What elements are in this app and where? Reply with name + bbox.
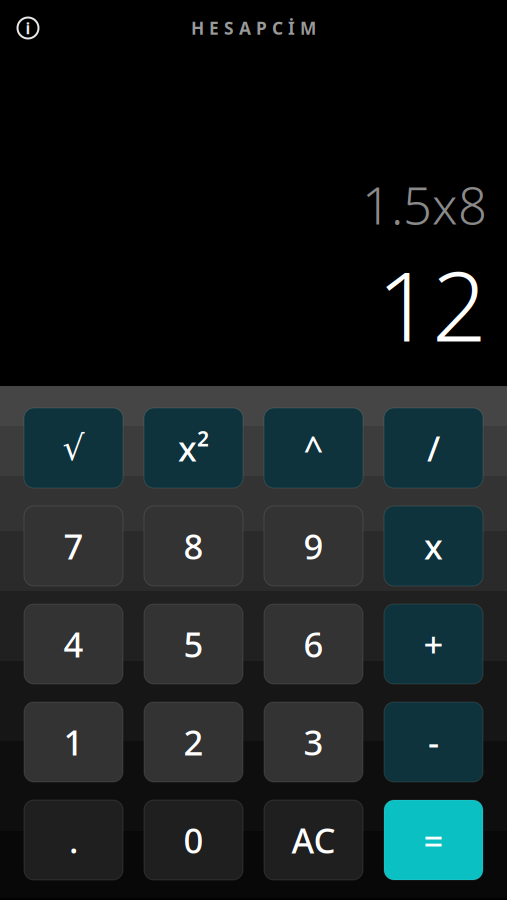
staticText: 1 xyxy=(63,719,83,765)
staticText: / xyxy=(427,425,440,471)
staticText: - xyxy=(428,719,439,765)
staticText: √ xyxy=(62,428,84,468)
staticText: . xyxy=(69,817,78,863)
button[interactable]: AC xyxy=(264,800,363,880)
staticText: 5 xyxy=(183,621,203,667)
staticText: H E S A P C İ M xyxy=(191,16,316,39)
button[interactable]: x² xyxy=(144,408,243,488)
staticText: 4 xyxy=(63,621,83,667)
staticText: x² xyxy=(178,425,209,471)
staticText: 9 xyxy=(303,523,323,569)
staticText: 3 xyxy=(303,719,323,765)
staticText: 7 xyxy=(63,523,83,569)
button[interactable]: 4 xyxy=(24,604,123,684)
staticText: i xyxy=(25,17,30,39)
button[interactable]: + xyxy=(384,604,483,684)
staticText: x xyxy=(424,523,443,569)
staticText: 12 xyxy=(377,240,487,368)
button[interactable]: 3 xyxy=(264,702,363,782)
button[interactable]: ^ xyxy=(264,408,363,488)
staticText: 6 xyxy=(303,621,323,667)
staticText: + xyxy=(423,621,443,667)
staticText: AC xyxy=(291,817,335,863)
button[interactable]: √ xyxy=(24,408,123,488)
button[interactable]: 5 xyxy=(144,604,243,684)
button[interactable]: 0 xyxy=(144,800,243,880)
button[interactable]: 2 xyxy=(144,702,243,782)
button[interactable]: - xyxy=(384,702,483,782)
button[interactable]: 6 xyxy=(264,604,363,684)
staticText: 2 xyxy=(183,719,203,765)
button[interactable]: x xyxy=(384,506,483,586)
staticText: ^ xyxy=(303,425,323,471)
staticText: 0 xyxy=(183,817,203,863)
button[interactable]: / xyxy=(384,408,483,488)
staticText: 8 xyxy=(183,523,203,569)
button[interactable]: = xyxy=(384,800,483,880)
button[interactable]: 8 xyxy=(144,506,243,586)
button[interactable]: . xyxy=(24,800,123,880)
staticText: 1.5x8 xyxy=(362,171,487,238)
button[interactable]: Info xyxy=(8,8,48,48)
staticText: = xyxy=(423,817,443,863)
button[interactable]: 7 xyxy=(24,506,123,586)
button[interactable]: 1 xyxy=(24,702,123,782)
button[interactable]: 9 xyxy=(264,506,363,586)
